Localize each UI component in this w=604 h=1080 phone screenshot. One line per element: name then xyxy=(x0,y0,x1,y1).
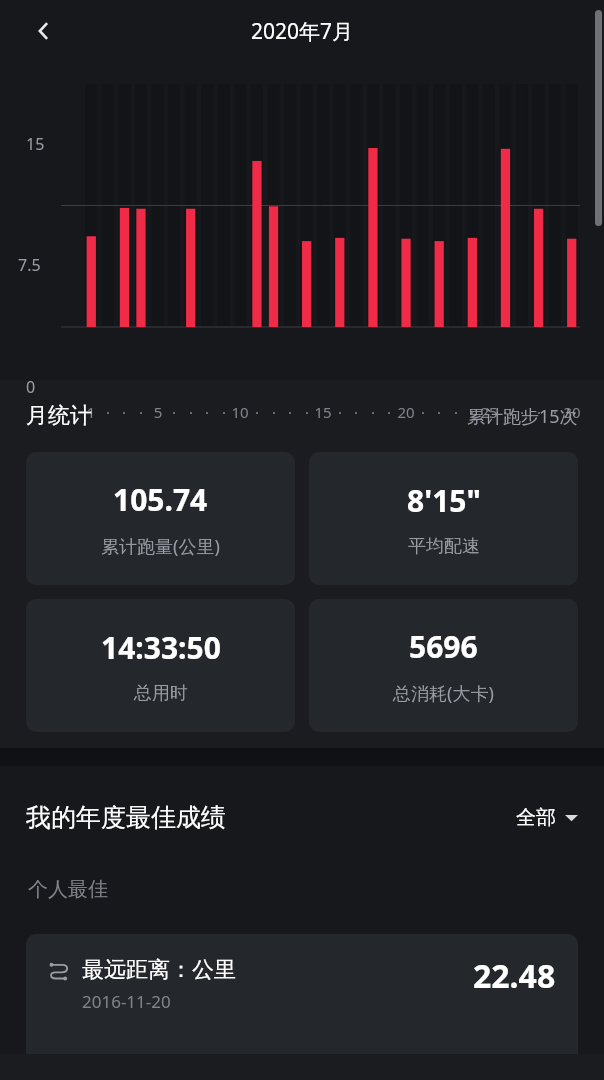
staticText: · xyxy=(467,402,477,422)
staticText: 累计跑量(公里) xyxy=(101,534,220,559)
staticText: 15 xyxy=(312,402,334,422)
staticText: · xyxy=(136,402,146,422)
staticText: 2016-11-20 xyxy=(82,990,171,1013)
staticText: 20 xyxy=(395,402,417,422)
staticText: · xyxy=(103,402,113,422)
button[interactable]: 105.74 xyxy=(26,452,295,585)
staticText: 1 xyxy=(86,402,96,422)
staticText: 22.48 xyxy=(473,954,556,998)
staticText: · xyxy=(285,402,295,422)
staticText: 累计跑步15次 xyxy=(467,404,578,429)
staticText: 个人最佳 xyxy=(28,877,108,902)
staticText: · xyxy=(368,402,378,422)
staticText: 总消耗(大卡) xyxy=(393,681,494,706)
staticText: 月统计 xyxy=(26,402,92,430)
button[interactable]: Back xyxy=(22,9,66,53)
button[interactable]: 全部 xyxy=(516,805,578,830)
staticText: · xyxy=(269,402,279,422)
staticText: 14:33:50 xyxy=(101,627,221,668)
staticText: 平均配速 xyxy=(408,535,480,558)
staticText: · xyxy=(451,402,461,422)
staticText: 2020年7月 xyxy=(251,17,354,46)
staticText: · xyxy=(550,402,560,422)
staticText: · xyxy=(302,402,312,422)
button[interactable]: 8'15" xyxy=(309,452,578,585)
staticText: · xyxy=(384,402,394,422)
staticText: · xyxy=(202,402,212,422)
staticText: · xyxy=(534,402,544,422)
staticText: · xyxy=(119,402,129,422)
staticText: 25 xyxy=(478,402,500,422)
staticText: 15 xyxy=(26,133,45,155)
staticText: 10 xyxy=(229,402,251,422)
button[interactable]: 14:33:50 xyxy=(26,599,295,732)
staticText: 5696 xyxy=(409,626,478,667)
staticText: · xyxy=(517,402,527,422)
staticText: 30 xyxy=(561,402,583,422)
staticText: 最远距离：公里 xyxy=(82,956,236,984)
staticText: · xyxy=(252,402,262,422)
staticText: 0 xyxy=(26,376,36,398)
button[interactable]: 5696 xyxy=(309,599,578,732)
staticText: · xyxy=(169,402,179,422)
staticText: · xyxy=(434,402,444,422)
staticText: · xyxy=(186,402,196,422)
staticText: 105.74 xyxy=(113,479,208,520)
staticText: 总用时 xyxy=(134,682,188,705)
button[interactable]: 最远距离：公里 xyxy=(26,934,578,1054)
staticText: 我的年度最佳成绩 xyxy=(26,802,226,833)
staticText: 7.5 xyxy=(18,254,41,276)
staticText: 5 xyxy=(153,402,163,422)
staticText: 全部 xyxy=(516,805,556,830)
staticText: · xyxy=(351,402,361,422)
staticText: 8'15" xyxy=(407,480,481,521)
staticText: · xyxy=(335,402,345,422)
staticText: · xyxy=(418,402,428,422)
staticText: · xyxy=(500,402,510,422)
staticText: · xyxy=(219,402,229,422)
